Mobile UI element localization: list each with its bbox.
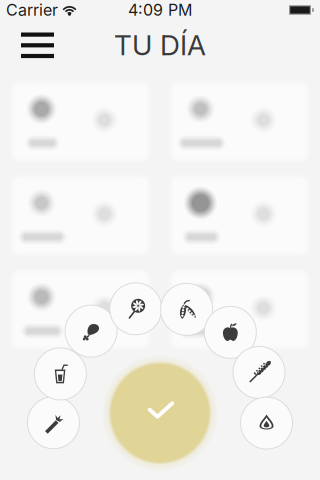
- button[interactable]: Legumes: [161, 283, 213, 335]
- button[interactable]: Meat: [65, 305, 117, 357]
- staticText: 4:09 PM: [128, 0, 192, 20]
- button[interactable]: Vegetables: [27, 397, 79, 449]
- button[interactable]: Sweets: [110, 283, 162, 335]
- staticText: TU DÍA: [114, 28, 206, 62]
- button[interactable]: Confirm: [109, 362, 210, 463]
- staticText: Carrier: [6, 0, 58, 20]
- button[interactable]: Fats: [240, 397, 292, 449]
- button[interactable]: Drinks: [34, 348, 86, 400]
- button[interactable]: Menu: [0, 19, 75, 70]
- button[interactable]: Grains: [233, 346, 285, 398]
- button[interactable]: Fruit: [204, 306, 256, 358]
